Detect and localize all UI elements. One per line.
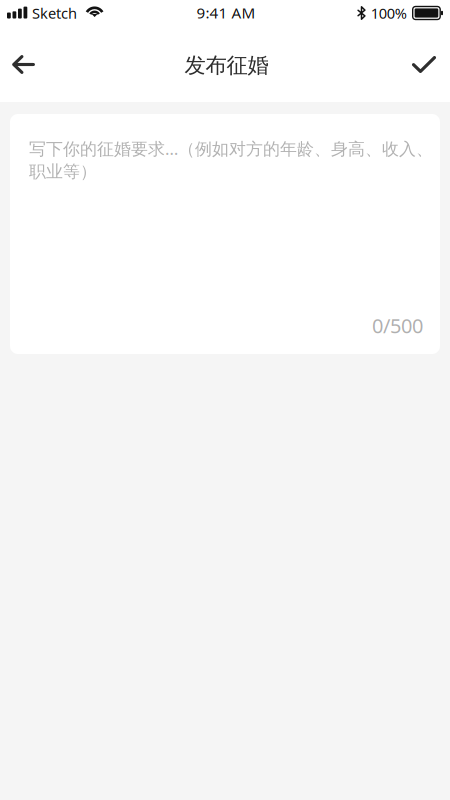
staticText: Sketch <box>32 3 77 23</box>
button[interactable]: 写下你的征婚要求…（例如对方的年龄、身高、收入、职业等） <box>10 114 440 354</box>
button[interactable]: Back <box>0 36 46 92</box>
staticText: 9:41 AM <box>196 2 255 23</box>
staticText: 0/500 <box>372 312 423 339</box>
button[interactable]: Submit <box>401 36 447 92</box>
staticText: 写下你的征婚要求…（例如对方的年龄、身高、收入、职业等） <box>29 137 433 182</box>
staticText: 发布征婚 <box>184 52 268 79</box>
staticText: 100% <box>371 3 407 23</box>
